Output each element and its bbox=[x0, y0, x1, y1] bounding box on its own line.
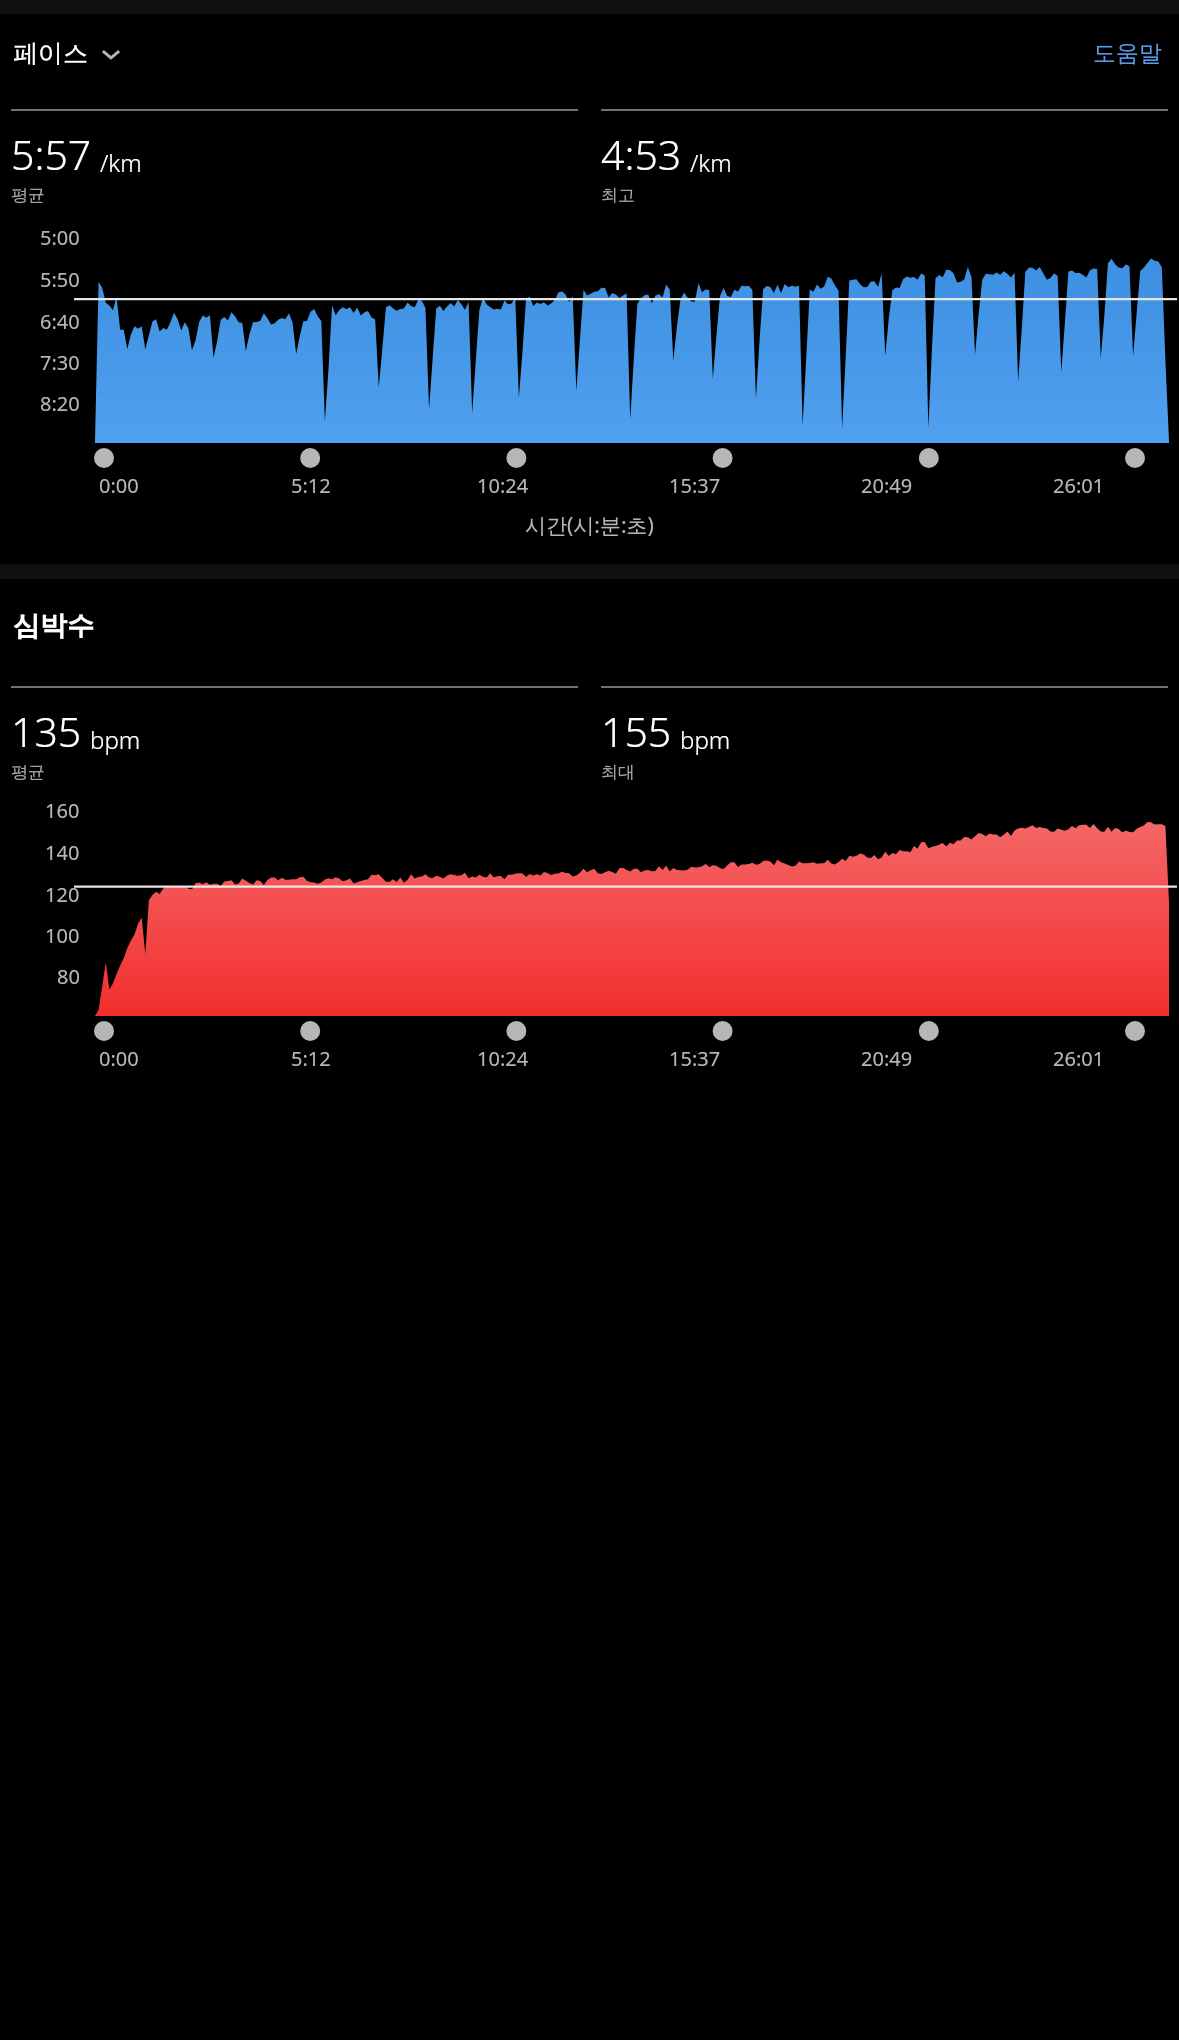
staticText: 0:00 bbox=[99, 472, 139, 499]
staticText: 심박수 bbox=[13, 609, 94, 643]
staticText: 20:49 bbox=[861, 1045, 913, 1072]
staticText: 4:53 bbox=[601, 126, 682, 182]
staticText: 5:12 bbox=[291, 472, 331, 499]
staticText: 7:30 bbox=[40, 349, 80, 376]
staticText: 26:01 bbox=[1053, 1045, 1105, 1072]
staticText: 시간(시:분:초) bbox=[525, 511, 654, 540]
staticText: 20:49 bbox=[861, 472, 913, 499]
staticText: 120 bbox=[45, 881, 80, 908]
staticText: /km bbox=[690, 146, 732, 179]
staticText: 평균 bbox=[11, 762, 45, 783]
staticText: 6:40 bbox=[40, 308, 80, 335]
other: 지표 선택 bbox=[99, 42, 123, 66]
staticText: 페이스 bbox=[13, 38, 88, 69]
staticText: 10:24 bbox=[477, 472, 529, 499]
staticText: 5:57 bbox=[11, 126, 92, 182]
staticText: 160 bbox=[45, 797, 80, 824]
staticText: /km bbox=[100, 146, 142, 179]
staticText: 도움말 bbox=[1093, 39, 1162, 68]
staticText: 80 bbox=[57, 963, 80, 990]
staticText: 0:00 bbox=[99, 1045, 139, 1072]
staticText: 최대 bbox=[601, 762, 635, 783]
staticText: 5:00 bbox=[40, 224, 80, 251]
staticText: bpm bbox=[680, 723, 731, 756]
staticText: 135 bbox=[11, 703, 82, 759]
staticText: bpm bbox=[90, 723, 141, 756]
staticText: 155 bbox=[601, 703, 672, 759]
staticText: 140 bbox=[45, 839, 80, 866]
staticText: 5:50 bbox=[40, 266, 80, 293]
staticText: 8:20 bbox=[40, 390, 80, 417]
staticText: 15:37 bbox=[669, 1045, 721, 1072]
staticText: 최고 bbox=[601, 185, 635, 206]
staticText: 10:24 bbox=[477, 1045, 529, 1072]
button[interactable]: 도움말 bbox=[1087, 31, 1168, 76]
staticText: 100 bbox=[45, 922, 80, 949]
button[interactable]: 페이스 bbox=[11, 30, 125, 77]
staticText: 26:01 bbox=[1053, 472, 1105, 499]
staticText: 15:37 bbox=[669, 472, 721, 499]
staticText: 평균 bbox=[11, 185, 45, 206]
staticText: 5:12 bbox=[291, 1045, 331, 1072]
